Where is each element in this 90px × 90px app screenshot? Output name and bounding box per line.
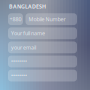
staticText: your email xyxy=(11,44,36,51)
staticText: Your full name xyxy=(11,30,45,37)
button[interactable]: •••••••• xyxy=(8,56,77,67)
staticText: •••••••• xyxy=(11,58,27,65)
button[interactable]: •••••••• xyxy=(8,70,77,81)
button[interactable]: Your full name xyxy=(8,27,77,39)
button[interactable]: Mobile Number xyxy=(25,13,77,25)
staticText: BANGLADESH xyxy=(9,3,46,10)
staticText: +880 xyxy=(9,16,21,23)
staticText: Mobile Number xyxy=(28,16,65,23)
button[interactable]: your email xyxy=(8,41,77,53)
staticText: •••••••• xyxy=(11,72,27,79)
button[interactable]: +880 xyxy=(8,13,23,25)
